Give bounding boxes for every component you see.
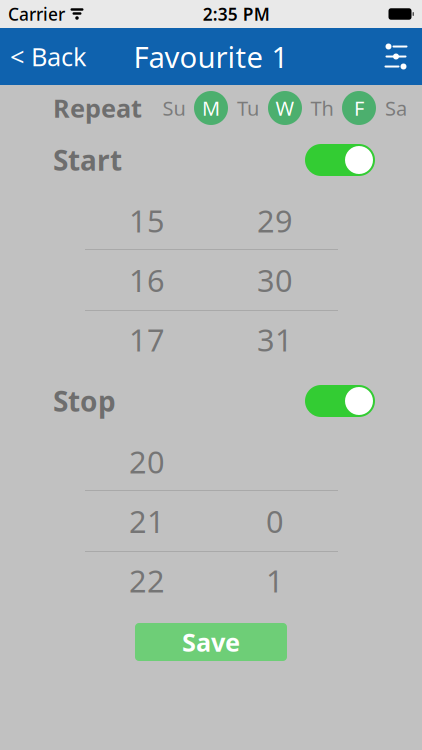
staticText: 20 (129, 441, 165, 482)
button[interactable]: Sa (379, 91, 413, 125)
staticText: Su (162, 95, 185, 121)
staticText: Stop (53, 382, 116, 420)
staticText: 16 (129, 260, 165, 300)
staticText: 22 (129, 560, 165, 601)
button[interactable]: Th (305, 91, 339, 125)
staticText: 31 (257, 319, 293, 360)
button[interactable]: Tu (231, 91, 265, 125)
button[interactable]: Settings (379, 39, 422, 73)
staticText: Start (53, 141, 122, 179)
button[interactable]: Start enabled (305, 144, 422, 176)
staticText: 17 (129, 319, 165, 360)
staticText: Th (310, 95, 333, 121)
staticText: 30 (257, 260, 293, 300)
button[interactable]: Stop enabled (305, 385, 422, 417)
staticText: 0 (266, 501, 284, 541)
staticText: 29 (257, 200, 293, 241)
staticText: 15 (129, 200, 165, 241)
staticText: Save (182, 625, 240, 659)
staticText: Favourite 1 (133, 37, 288, 76)
staticText: W (275, 95, 294, 121)
button[interactable]: M (194, 91, 228, 125)
staticText: Sa (385, 95, 407, 121)
button[interactable]: Su (157, 91, 191, 125)
staticText: 2:35 PM (203, 2, 270, 25)
staticText: Carrier (8, 2, 65, 25)
staticText: Tu (237, 95, 259, 121)
staticText: Repeat (53, 91, 142, 125)
staticText: F (354, 95, 364, 121)
staticText: M (202, 95, 220, 121)
button[interactable]: W (268, 91, 302, 125)
staticText: 21 (129, 501, 165, 541)
staticText: 1 (266, 560, 284, 601)
staticText: < Back (10, 40, 87, 73)
button[interactable]: F (342, 91, 376, 125)
button[interactable]: Save (135, 623, 287, 661)
button[interactable]: < Back (0, 30, 87, 83)
